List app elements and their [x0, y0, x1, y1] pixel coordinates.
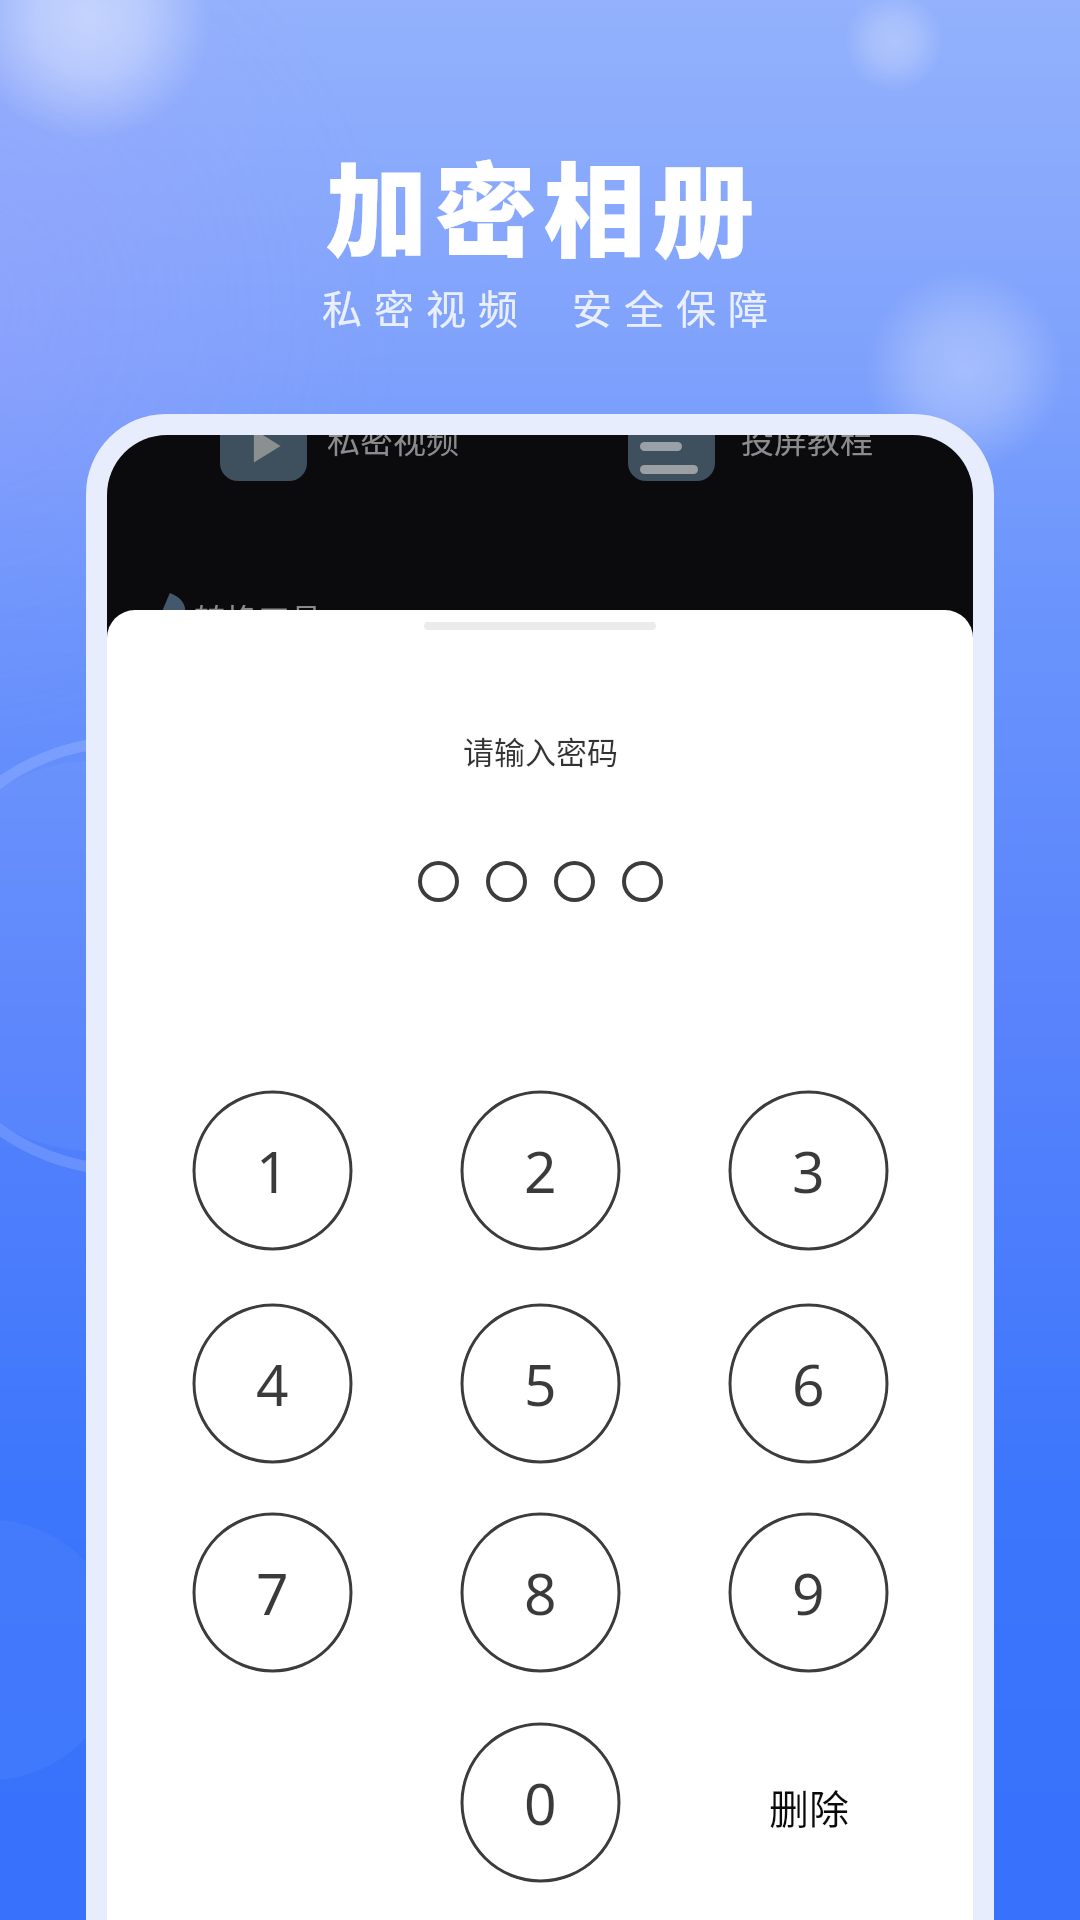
staticText: 私密视频 — [327, 435, 459, 463]
staticText: 6 — [792, 1345, 825, 1423]
staticText: 删除 — [769, 1778, 849, 1836]
button[interactable]: 6 — [728, 1303, 889, 1464]
button[interactable]: 5 — [460, 1303, 621, 1464]
staticText: 转换工具 — [194, 595, 323, 641]
staticText: 5 — [524, 1345, 557, 1423]
button[interactable]: 3 — [728, 1090, 889, 1251]
button[interactable]: 9 — [728, 1512, 889, 1673]
staticText: 7 — [256, 1554, 289, 1632]
button[interactable]: 私密视频 — [220, 435, 307, 481]
staticText: 私密视频 安全保障 — [322, 278, 780, 336]
staticText: 2 — [524, 1132, 557, 1210]
button[interactable]: 0 — [460, 1722, 621, 1883]
staticText: 8 — [524, 1554, 557, 1632]
staticText: 1 — [256, 1132, 289, 1210]
staticText: 0 — [524, 1764, 557, 1842]
button[interactable]: 4 — [192, 1303, 353, 1464]
button[interactable]: 删除 — [728, 1722, 889, 1883]
button[interactable]: 7 — [192, 1512, 353, 1673]
staticText: 投屏教程 — [741, 435, 873, 463]
button[interactable]: 投屏教程 — [628, 435, 715, 481]
button[interactable]: 2 — [460, 1090, 621, 1251]
staticText: 4 — [256, 1345, 289, 1423]
staticText: 9 — [792, 1554, 825, 1632]
button[interactable]: 1 — [192, 1090, 353, 1251]
staticText: 请输入密码 — [463, 728, 618, 773]
staticText: 3 — [792, 1132, 825, 1210]
staticText: 加密相册 — [322, 131, 758, 279]
button[interactable]: 8 — [460, 1512, 621, 1673]
